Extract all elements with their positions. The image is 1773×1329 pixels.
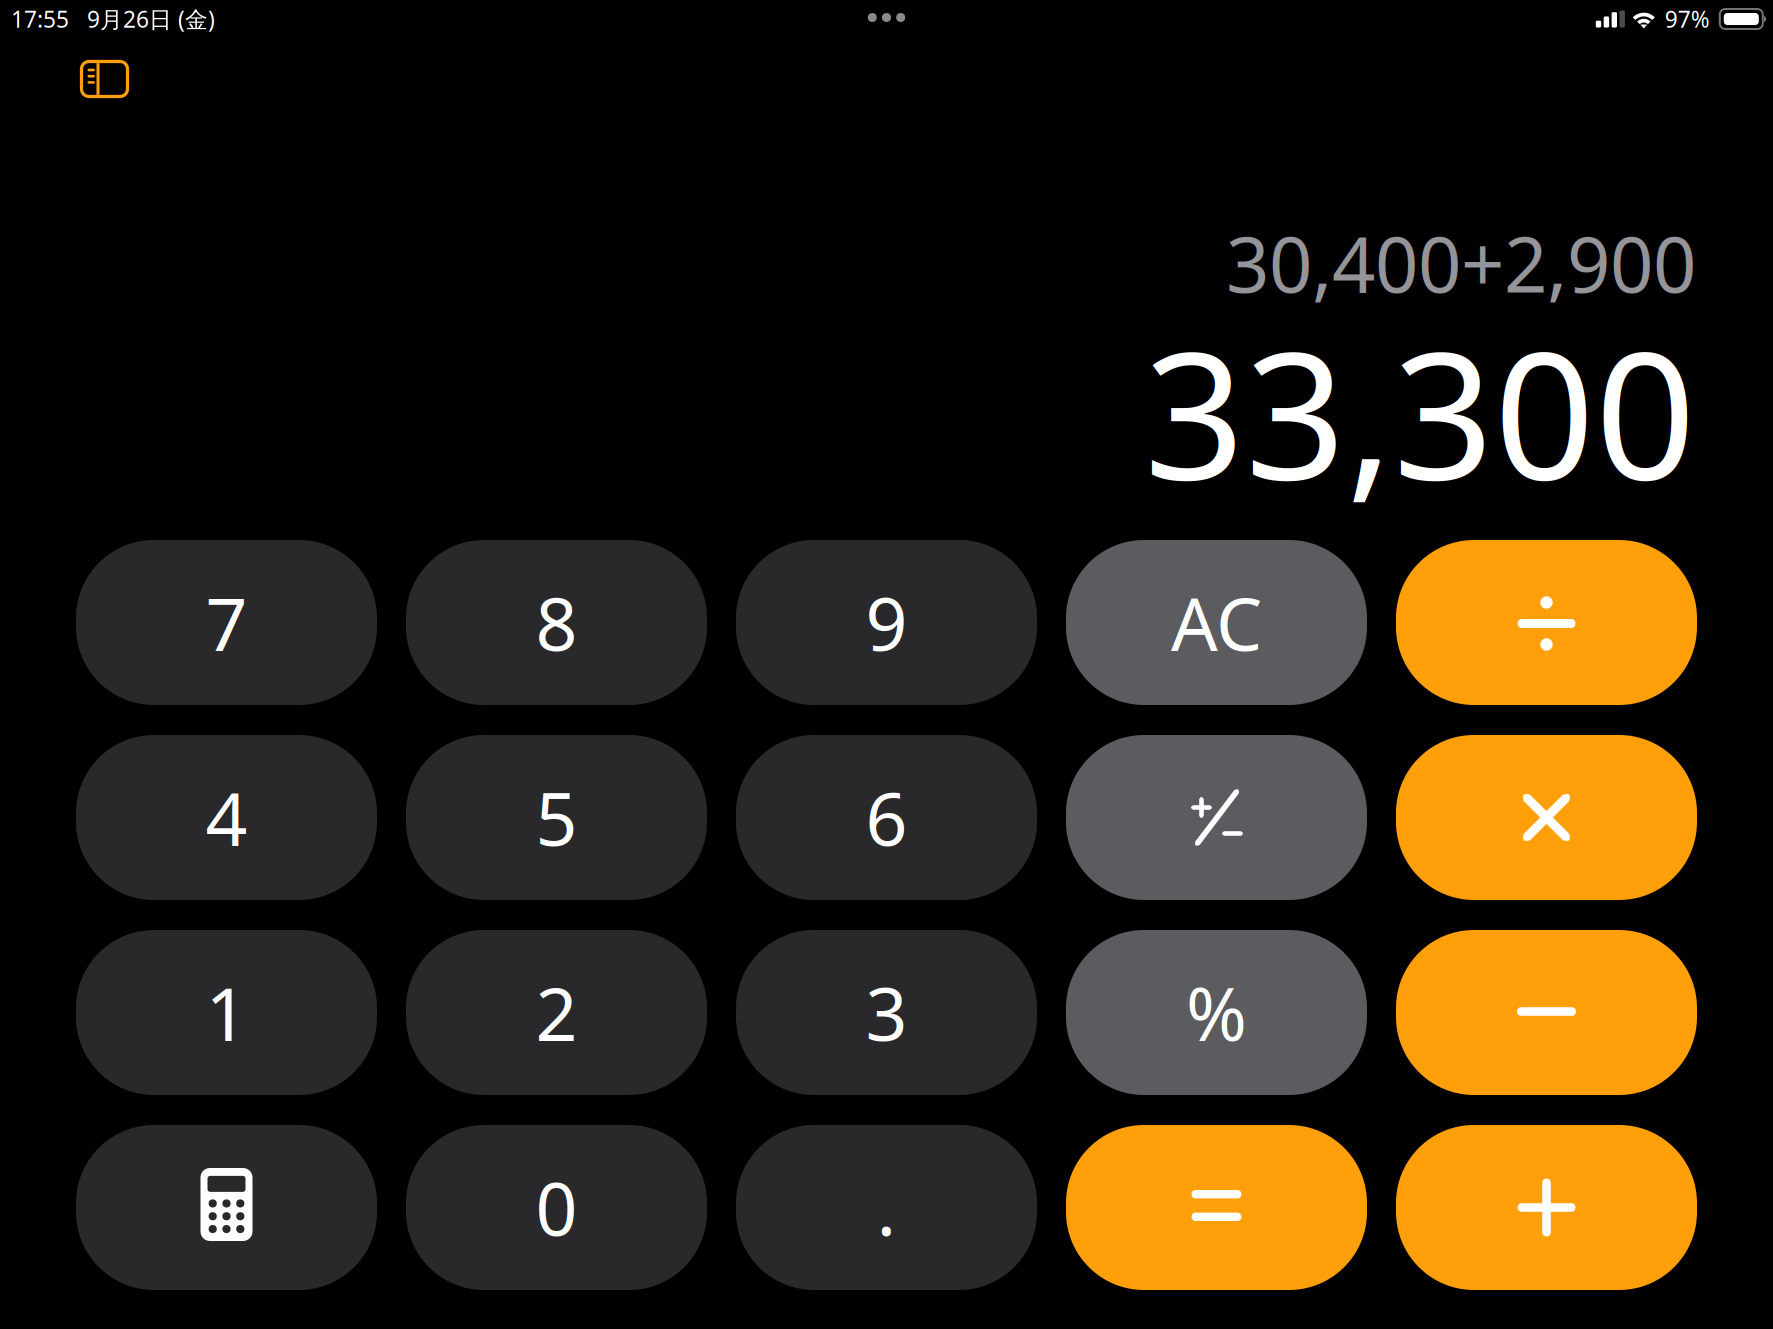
button[interactable]: 6 [736, 735, 1037, 900]
button[interactable]: 9 [736, 540, 1037, 705]
staticText: 5 [535, 769, 577, 866]
staticText: 3 [865, 964, 907, 1061]
staticText: AC [1171, 574, 1262, 671]
staticText: 30,400+2,900 [1226, 212, 1696, 313]
staticText: % [1186, 964, 1247, 1061]
button[interactable]: Multiply [1396, 735, 1697, 900]
button[interactable]: 5 [406, 735, 707, 900]
staticText: 8 [535, 574, 577, 671]
staticText: 17:55 9月26日 (金) [11, 4, 215, 34]
staticText: 7 [205, 574, 247, 671]
button[interactable]: Calculator [76, 1125, 377, 1290]
button[interactable]: Plus Minus [1066, 735, 1367, 900]
button[interactable]: 4 [76, 735, 377, 900]
button[interactable]: Minus [1396, 930, 1697, 1095]
staticText: 97% [1665, 4, 1710, 34]
button[interactable]: Plus [1396, 1125, 1697, 1290]
staticText: 33,300 [1144, 294, 1696, 528]
staticText: 2 [535, 964, 577, 1061]
button[interactable]: AC [1066, 540, 1367, 705]
button[interactable]: Divide [1396, 540, 1697, 705]
button[interactable]: 0 [406, 1125, 707, 1290]
button[interactable]: 8 [406, 540, 707, 705]
staticText: 0 [535, 1159, 577, 1256]
staticText: 6 [865, 769, 907, 866]
button[interactable]: Equals [1066, 1125, 1367, 1290]
button[interactable]: . [736, 1125, 1037, 1290]
button[interactable]: 7 [76, 540, 377, 705]
staticText: 1 [205, 964, 247, 1061]
button[interactable]: 3 [736, 930, 1037, 1095]
button[interactable]: 2 [406, 930, 707, 1095]
staticText: 9 [865, 574, 907, 671]
button[interactable]: % [1066, 930, 1367, 1095]
staticText: . [876, 1159, 896, 1256]
button[interactable]: Show Sidebar [69, 49, 139, 108]
button[interactable]: 1 [76, 930, 377, 1095]
staticText: 4 [205, 769, 247, 866]
